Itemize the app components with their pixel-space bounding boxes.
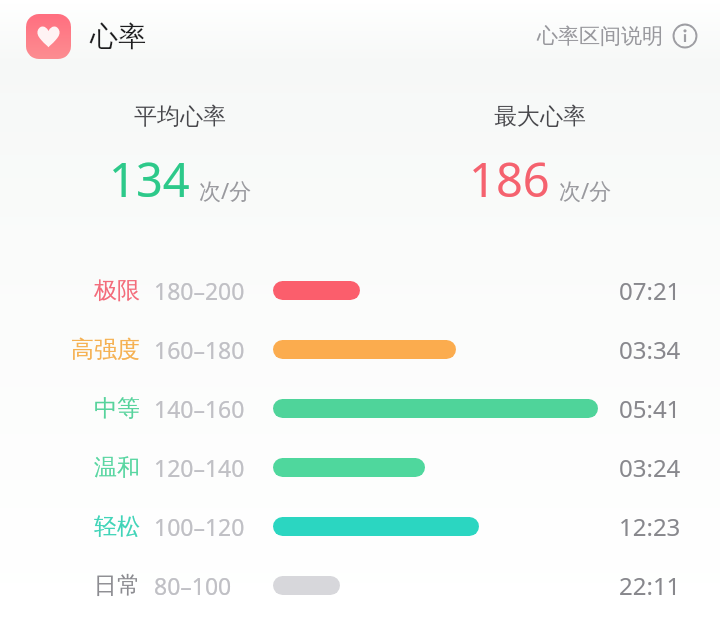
- button[interactable]: 高强度: [0, 320, 720, 379]
- staticText: 极限: [94, 276, 140, 305]
- button[interactable]: 极限: [0, 261, 720, 320]
- staticText: 03:34: [619, 333, 681, 366]
- staticText: 186: [469, 147, 550, 211]
- staticText: 日常: [94, 571, 140, 600]
- staticText: 160–180: [154, 334, 245, 365]
- button[interactable]: 心率区间说明: [535, 15, 700, 57]
- staticText: 心率: [90, 19, 146, 54]
- staticText: 22:11: [619, 569, 681, 602]
- button[interactable]: 轻松: [0, 497, 720, 556]
- staticText: 12:23: [619, 510, 681, 543]
- staticText: 中等: [94, 394, 140, 423]
- staticText: 最大心率: [494, 102, 586, 131]
- staticText: 次/分: [199, 175, 252, 205]
- button[interactable]: 心率: [26, 14, 71, 59]
- staticText: 心率区间说明: [537, 23, 663, 49]
- staticText: 温和: [94, 453, 140, 482]
- staticText: 轻松: [94, 512, 140, 541]
- button[interactable]: 中等: [0, 379, 720, 438]
- staticText: 03:24: [619, 451, 681, 484]
- staticText: 140–160: [154, 393, 245, 424]
- staticText: 07:21: [619, 274, 681, 307]
- other: 心率区间说明: [672, 23, 698, 49]
- staticText: 05:41: [619, 392, 681, 425]
- staticText: 100–120: [154, 511, 245, 542]
- staticText: 134: [109, 147, 190, 211]
- staticText: 平均心率: [134, 102, 226, 131]
- staticText: 120–140: [154, 452, 245, 483]
- button[interactable]: 日常: [0, 556, 720, 615]
- button[interactable]: 温和: [0, 438, 720, 497]
- staticText: 80–100: [154, 570, 232, 601]
- staticText: 次/分: [559, 175, 612, 205]
- staticText: 高强度: [71, 335, 140, 364]
- staticText: 180–200: [154, 275, 245, 306]
